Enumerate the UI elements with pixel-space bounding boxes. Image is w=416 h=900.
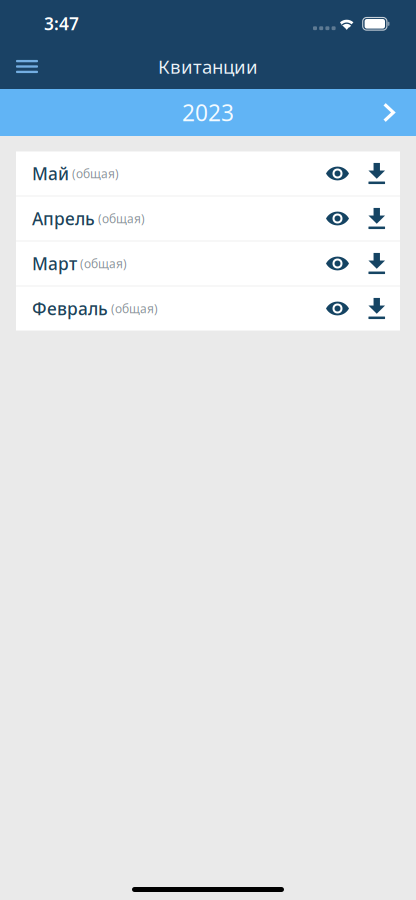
staticText: (общая) — [95, 210, 145, 226]
staticText: (общая) — [77, 255, 127, 271]
staticText: 3:47 — [44, 12, 79, 35]
button[interactable]: Просмотр — [317, 241, 357, 285]
staticText: Февраль — [32, 297, 108, 320]
staticText: Апрель — [32, 207, 95, 230]
staticText: (общая) — [69, 165, 119, 181]
button[interactable]: Скачать — [357, 286, 396, 330]
button[interactable]: Просмотр — [317, 196, 357, 240]
button[interactable]: 2023 — [0, 89, 416, 136]
button[interactable]: Просмотр — [317, 286, 357, 330]
staticText: (общая) — [108, 300, 158, 316]
button[interactable]: Меню — [5, 44, 49, 89]
button[interactable]: Скачать — [357, 151, 396, 195]
button[interactable]: Просмотр — [317, 151, 357, 195]
staticText: Май — [32, 162, 69, 185]
button[interactable]: Скачать — [357, 196, 396, 240]
staticText: Квитанции — [158, 54, 258, 79]
button[interactable]: Скачать — [357, 241, 396, 285]
staticText: 2023 — [182, 97, 234, 127]
staticText: Март — [32, 252, 77, 275]
